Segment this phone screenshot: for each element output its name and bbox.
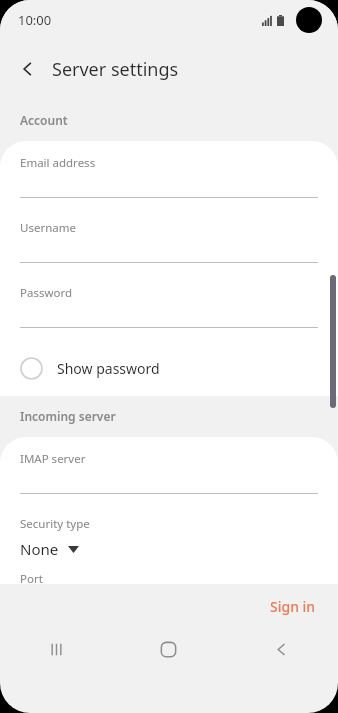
staticText: Incoming server bbox=[20, 408, 116, 424]
button[interactable]: Back bbox=[225, 628, 338, 671]
button[interactable]: Back bbox=[6, 47, 50, 91]
button[interactable]: Username bbox=[0, 220, 338, 285]
button[interactable]: Home bbox=[112, 628, 225, 671]
staticText: Username bbox=[20, 220, 76, 236]
button[interactable]: Recent apps bbox=[0, 628, 112, 671]
staticText: Server settings bbox=[52, 57, 179, 82]
staticText: Sign in bbox=[270, 597, 316, 616]
staticText: None bbox=[20, 539, 59, 559]
staticText: Show password bbox=[57, 359, 160, 378]
staticText: Email address bbox=[20, 155, 96, 171]
staticText: Password bbox=[20, 285, 73, 301]
button[interactable]: Show password bbox=[0, 350, 338, 386]
staticText: Port bbox=[20, 571, 43, 584]
staticText: 10:00 bbox=[18, 11, 52, 29]
staticText: IMAP server bbox=[20, 451, 86, 467]
button[interactable]: Email address bbox=[0, 155, 338, 220]
button[interactable]: Sign in bbox=[258, 591, 328, 622]
button[interactable]: Security type bbox=[0, 516, 338, 559]
button[interactable]: Password bbox=[0, 285, 338, 350]
staticText: Security type bbox=[20, 516, 90, 532]
staticText: Account bbox=[20, 112, 68, 128]
button[interactable]: IMAP server bbox=[0, 451, 338, 516]
